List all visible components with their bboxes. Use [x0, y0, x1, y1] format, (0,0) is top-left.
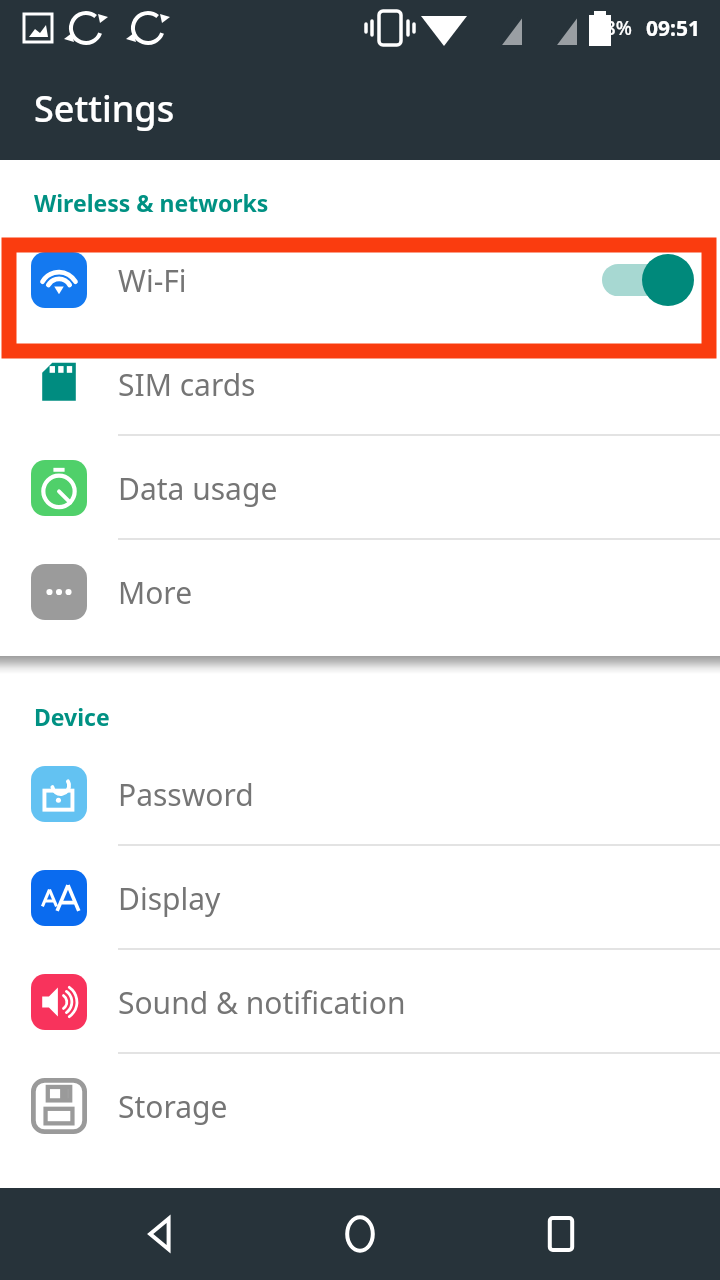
staticText: More — [118, 572, 720, 613]
button[interactable]: Storage — [0, 1054, 720, 1158]
button[interactable]: Display — [0, 846, 720, 950]
button[interactable]: Sound & notification — [0, 950, 720, 1054]
button[interactable]: Wi-Fi toggle — [602, 254, 694, 306]
staticText: Sound & notification — [118, 982, 720, 1023]
staticText: Wi-Fi — [118, 260, 602, 301]
staticText: Display — [118, 878, 720, 919]
button[interactable]: Wi-Fi — [0, 228, 720, 332]
staticText: Device — [34, 701, 110, 732]
staticText: Settings — [34, 84, 175, 133]
button[interactable]: Home — [318, 1192, 402, 1276]
staticText: Data usage — [118, 468, 720, 509]
button[interactable]: More — [0, 540, 720, 644]
staticText: 09:51 — [646, 14, 700, 43]
button[interactable]: Password — [0, 742, 720, 846]
button[interactable]: Recents — [519, 1192, 603, 1276]
button[interactable]: SIM cards — [0, 332, 720, 436]
staticText: Password — [118, 774, 720, 815]
button[interactable]: Data usage — [0, 436, 720, 540]
button[interactable]: Back — [117, 1192, 201, 1276]
staticText: SIM cards — [118, 364, 720, 405]
staticText: 88% — [594, 15, 632, 41]
staticText: Wireless & networks — [34, 187, 269, 218]
staticText: Storage — [118, 1086, 720, 1127]
